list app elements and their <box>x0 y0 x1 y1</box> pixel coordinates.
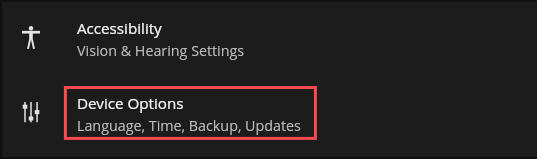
other: Device Options <box>24 102 38 123</box>
staticText: Vision & Hearing Settings <box>77 41 245 60</box>
button[interactable]: Device Options <box>0 83 330 147</box>
button[interactable]: Accessibility <box>0 8 330 72</box>
staticText: Language, Time, Backup, Updates <box>77 116 301 135</box>
other: Accessibility <box>22 26 40 50</box>
staticText: Accessibility <box>77 18 162 39</box>
staticText: Device Options <box>77 93 184 114</box>
